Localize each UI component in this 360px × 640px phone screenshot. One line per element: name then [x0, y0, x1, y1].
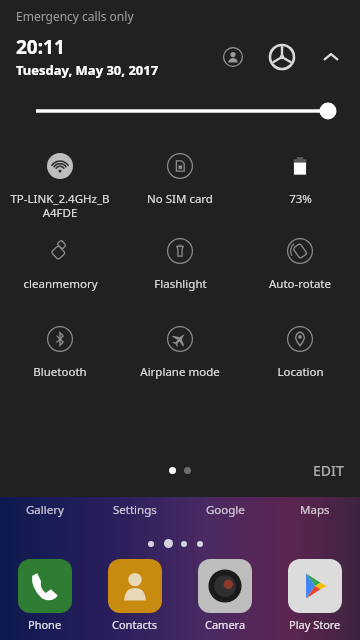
button[interactable]: Maps	[270, 502, 360, 518]
button[interactable]: Airplane mode	[120, 324, 240, 380]
button[interactable]: No SIM card	[120, 151, 240, 207]
staticText: Settings	[113, 502, 157, 518]
button[interactable]: Auto-rotate	[240, 236, 360, 292]
staticText: EDIT	[313, 461, 344, 480]
button[interactable]: Contacts	[90, 559, 180, 632]
staticText: Flashlight	[154, 276, 207, 292]
staticText: Tuesday, May 30, 2017	[16, 61, 159, 79]
button[interactable]: Camera	[180, 559, 270, 632]
button[interactable]: Collapse panel	[314, 40, 348, 74]
staticText: 20:11	[16, 34, 65, 60]
staticText: cleanmemory	[23, 276, 98, 292]
staticText: Maps	[300, 502, 330, 518]
button[interactable]: Settings	[90, 502, 180, 518]
staticText: Camera	[205, 617, 246, 632]
button[interactable]: Phone	[0, 559, 90, 632]
button[interactable]: Driving mode	[262, 37, 302, 77]
button[interactable]: User profile	[216, 40, 250, 74]
staticText: Contacts	[112, 617, 158, 632]
button[interactable]: Location	[240, 324, 360, 380]
staticText: Bluetooth	[33, 364, 87, 380]
staticText: 73%	[289, 191, 312, 207]
staticText: Google	[206, 502, 245, 518]
staticText: TP-LINK_2.4GHz_B A4FDE	[10, 191, 110, 220]
staticText: No SIM card	[147, 191, 213, 207]
staticText: Gallery	[26, 502, 64, 518]
button[interactable]: cleanmemory	[0, 236, 120, 292]
button[interactable]: Bluetooth	[0, 324, 120, 380]
staticText: Play Store	[289, 617, 341, 632]
staticText: Location	[277, 364, 324, 380]
button[interactable]: Brightness	[0, 97, 360, 125]
button[interactable]: Google	[180, 502, 270, 518]
button[interactable]: Flashlight	[120, 236, 240, 292]
staticText: Phone	[28, 617, 62, 632]
button[interactable]: 73%	[240, 151, 360, 207]
button[interactable]: Gallery	[0, 502, 90, 518]
staticText: Emergency calls only	[16, 8, 134, 24]
button[interactable]: TP-LINK_2.4GHz_B A4FDE	[0, 151, 120, 220]
staticText: Auto-rotate	[269, 276, 331, 292]
button[interactable]: Play Store	[270, 559, 360, 632]
button[interactable]: EDIT	[297, 449, 360, 492]
staticText: Airplane mode	[140, 364, 220, 380]
